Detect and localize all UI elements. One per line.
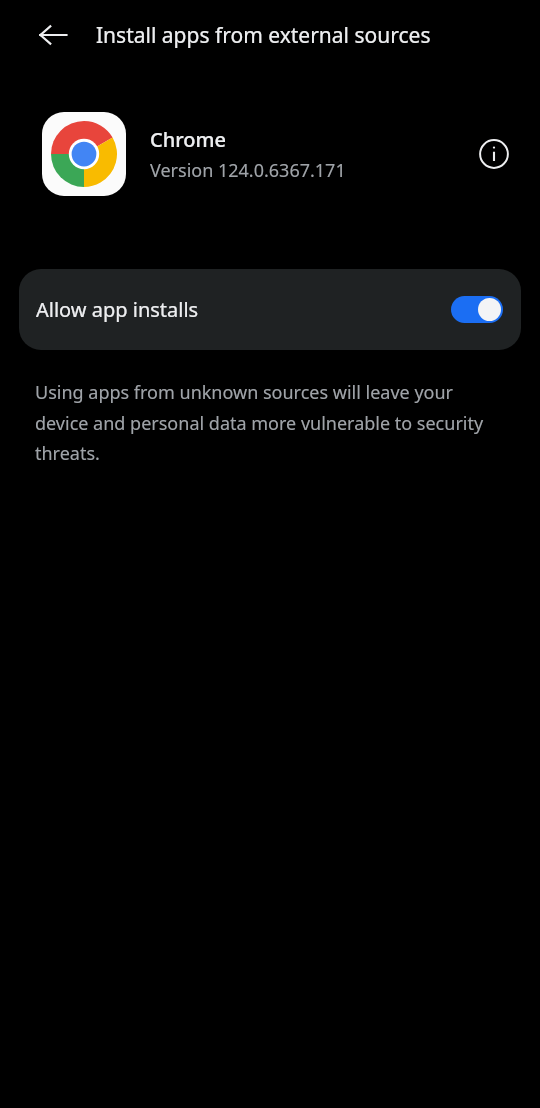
staticText: Install apps from external sources [96, 21, 431, 50]
button[interactable]: Back [26, 8, 80, 62]
staticText: Version 124.0.6367.171 [150, 158, 346, 183]
staticText: Using apps from unknown sources will lea… [35, 380, 506, 465]
button[interactable]: App info [470, 130, 518, 178]
staticText: Chrome [150, 126, 226, 153]
staticText: Allow app installs [36, 296, 451, 323]
button[interactable]: Allow app installs toggle [451, 296, 503, 323]
button[interactable]: Allow app installs [19, 269, 521, 350]
